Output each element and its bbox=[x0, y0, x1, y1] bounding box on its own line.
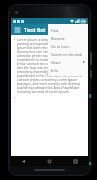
button[interactable]: Find bbox=[48, 26, 88, 34]
button[interactable]: Back bbox=[11, 156, 36, 166]
button[interactable]: Open navigation drawer bbox=[14, 26, 21, 33]
staticText: Info bbox=[51, 68, 58, 73]
staticText: Lorem Ipsum is simply dummy text of the … bbox=[17, 38, 85, 94]
button[interactable]: Share bbox=[48, 58, 88, 66]
staticText: Rename bbox=[51, 36, 65, 41]
staticText: Go to Line... bbox=[51, 44, 72, 49]
staticText: Search on the web bbox=[51, 52, 83, 57]
button[interactable]: Recent apps bbox=[62, 156, 88, 166]
button[interactable]: Go to Line... bbox=[48, 42, 88, 50]
button[interactable]: Rename bbox=[48, 34, 88, 42]
staticText: • bbox=[14, 96, 16, 100]
staticText: Share bbox=[51, 60, 61, 65]
staticText: • bbox=[14, 38, 16, 42]
staticText: Find bbox=[51, 28, 59, 33]
button[interactable]: Info bbox=[48, 66, 88, 74]
button[interactable]: Search on the web bbox=[48, 50, 88, 58]
staticText: Text list bbox=[24, 26, 46, 33]
button[interactable]: Home bbox=[36, 156, 62, 166]
